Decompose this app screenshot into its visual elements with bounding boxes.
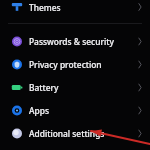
staticText: Apps — [29, 105, 49, 116]
staticText: Themes — [29, 2, 61, 13]
button[interactable]: Apps — [0, 99, 150, 122]
button[interactable]: Passwords and security — [0, 30, 150, 53]
staticText: Privacy protection — [29, 59, 102, 70]
staticText: Passwords & security — [29, 36, 114, 47]
staticText: Battery — [29, 82, 59, 93]
staticText: Additional settings — [29, 128, 105, 139]
button[interactable]: Battery — [0, 76, 150, 99]
button[interactable]: Themes — [0, 0, 150, 18]
button[interactable]: Additional settings — [0, 122, 150, 145]
button[interactable]: Privacy protection — [0, 53, 150, 76]
